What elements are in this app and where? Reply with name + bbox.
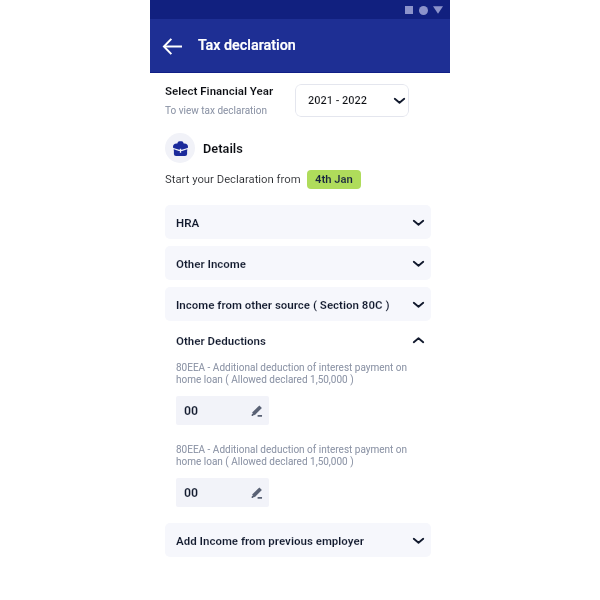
button[interactable]: 00	[176, 396, 269, 425]
button[interactable]: Edit amount	[250, 404, 264, 418]
button[interactable]: 4th Jan	[307, 170, 361, 189]
staticText: Other Deductions	[176, 334, 266, 347]
staticText: HRA	[176, 216, 200, 229]
button[interactable]: Other Deductions	[165, 323, 431, 357]
staticText: 4th Jan	[315, 173, 353, 186]
button[interactable]: 2021 - 2022	[295, 84, 409, 117]
staticText: 80EEA - Additional deduction of interest…	[176, 362, 412, 385]
staticText: To view tax declaration	[165, 105, 268, 117]
staticText: Select Financial Year	[165, 84, 274, 97]
staticText: 80EEA - Additional deduction of interest…	[176, 444, 412, 467]
staticText: Details	[203, 141, 243, 156]
staticText: Add Income from previous employer	[176, 534, 364, 547]
button[interactable]: Other Income	[165, 246, 431, 280]
staticText: Income from other source ( Section 80C )	[176, 298, 390, 311]
button[interactable]: HRA	[165, 205, 431, 239]
button[interactable]: Edit amount	[250, 486, 264, 500]
button[interactable]: 00	[176, 478, 269, 507]
staticText: 00	[184, 404, 199, 418]
button[interactable]: Add Income from previous employer	[165, 523, 431, 557]
staticText: 2021 - 2022	[308, 94, 368, 107]
staticText: Tax declaration	[198, 37, 296, 54]
button[interactable]: Back	[156, 30, 188, 62]
button[interactable]: Income from other source ( Section 80C )	[165, 287, 431, 321]
staticText: Start your Declaration from	[165, 173, 301, 186]
staticText: Other Income	[176, 257, 247, 270]
staticText: 00	[184, 486, 199, 500]
